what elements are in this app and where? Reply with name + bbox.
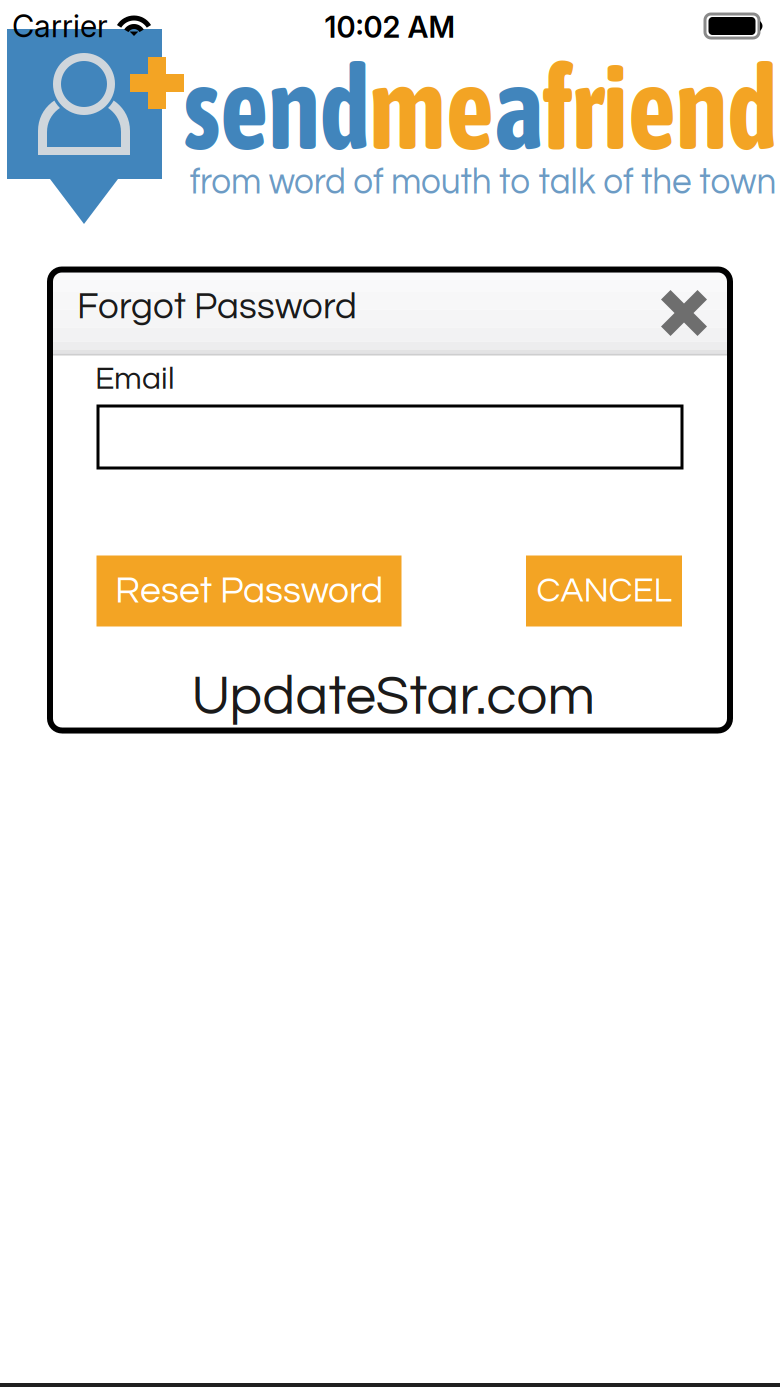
staticText: friend: [549, 40, 780, 173]
staticText: me: [358, 40, 495, 173]
button[interactable]: CANCEL: [526, 555, 682, 626]
button[interactable]: Reset Password: [96, 555, 401, 626]
staticText: UpdateStar.com: [191, 669, 594, 725]
staticText: from word of mouth to talk of the town: [171, 163, 780, 201]
staticText: send: [153, 40, 358, 173]
staticText: Carrier: [12, 7, 108, 44]
staticText: 10:02 AM: [324, 9, 455, 45]
staticText: Forgot Password: [77, 288, 357, 326]
button[interactable]: Forgot Password: [77, 288, 357, 326]
staticText: CANCEL: [536, 573, 671, 609]
button[interactable]: Close: [661, 290, 707, 336]
staticText: Email: [95, 362, 175, 395]
staticText: a: [495, 40, 549, 173]
staticText: Reset Password: [115, 572, 383, 610]
